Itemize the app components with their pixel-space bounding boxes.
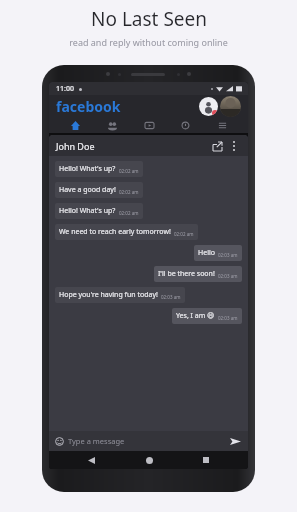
staticText: 02:03 am xyxy=(218,315,238,321)
button[interactable]: Hope you're having fun today! xyxy=(55,287,185,303)
button[interactable]: We need to reach early tomorrow! xyxy=(55,224,198,240)
staticText: We need to reach early tomorrow! xyxy=(59,227,171,237)
button[interactable]: Yes, I am 😄 xyxy=(172,308,242,324)
button[interactable]: Back xyxy=(76,451,106,469)
staticText: Hello xyxy=(198,248,215,258)
button[interactable]: Open in new window xyxy=(210,139,224,153)
button[interactable]: Hello xyxy=(194,245,242,261)
button[interactable]: Home xyxy=(134,451,164,469)
staticText: Type a message xyxy=(68,436,125,446)
button[interactable]: Account xyxy=(220,96,241,117)
staticText: read and reply without coming online xyxy=(69,36,228,48)
button[interactable]: John Doe xyxy=(56,135,241,156)
staticText: Hello! What's up? xyxy=(59,164,116,174)
button[interactable]: Recent apps xyxy=(191,451,221,469)
button[interactable]: I'll be there soon! xyxy=(154,266,242,282)
staticText: Have a good day! xyxy=(59,185,116,195)
staticText: 02:03 am xyxy=(161,294,181,300)
button[interactable]: Have a good day! xyxy=(55,182,143,198)
button[interactable]: More options xyxy=(227,139,241,153)
staticText: 02:02 am xyxy=(119,210,139,216)
staticText: Hope you're having fun today! xyxy=(59,290,158,300)
staticText: John Doe xyxy=(56,140,95,152)
button[interactable]: Tab 2 xyxy=(101,118,123,133)
staticText: facebook xyxy=(56,97,121,116)
button[interactable]: Hello! What's up? xyxy=(55,161,143,177)
button[interactable]: Tab 3 xyxy=(138,118,160,133)
button[interactable]: Tab 4 xyxy=(174,118,196,133)
staticText: 02:02 am xyxy=(119,189,139,195)
staticText: Hello! What's up? xyxy=(59,206,116,216)
button[interactable]: Send xyxy=(228,434,242,448)
button[interactable]: Profile xyxy=(199,97,218,116)
staticText: 02:03 am xyxy=(218,252,238,258)
button[interactable]: Tab 1 xyxy=(64,118,86,133)
staticText: 11:00 xyxy=(56,84,74,94)
staticText: 02:02 am xyxy=(119,168,139,174)
staticText: 02:02 am xyxy=(174,231,194,237)
button[interactable]: Hello! What's up? xyxy=(55,203,143,219)
staticText: 02:03 am xyxy=(218,273,238,279)
staticText: No Last Seen xyxy=(91,6,207,32)
button[interactable]: Type a message xyxy=(55,431,242,451)
button[interactable]: Tab 5 xyxy=(211,118,233,133)
staticText: I'll be there soon! xyxy=(158,269,215,279)
staticText: Yes, I am 😄 xyxy=(176,311,215,321)
